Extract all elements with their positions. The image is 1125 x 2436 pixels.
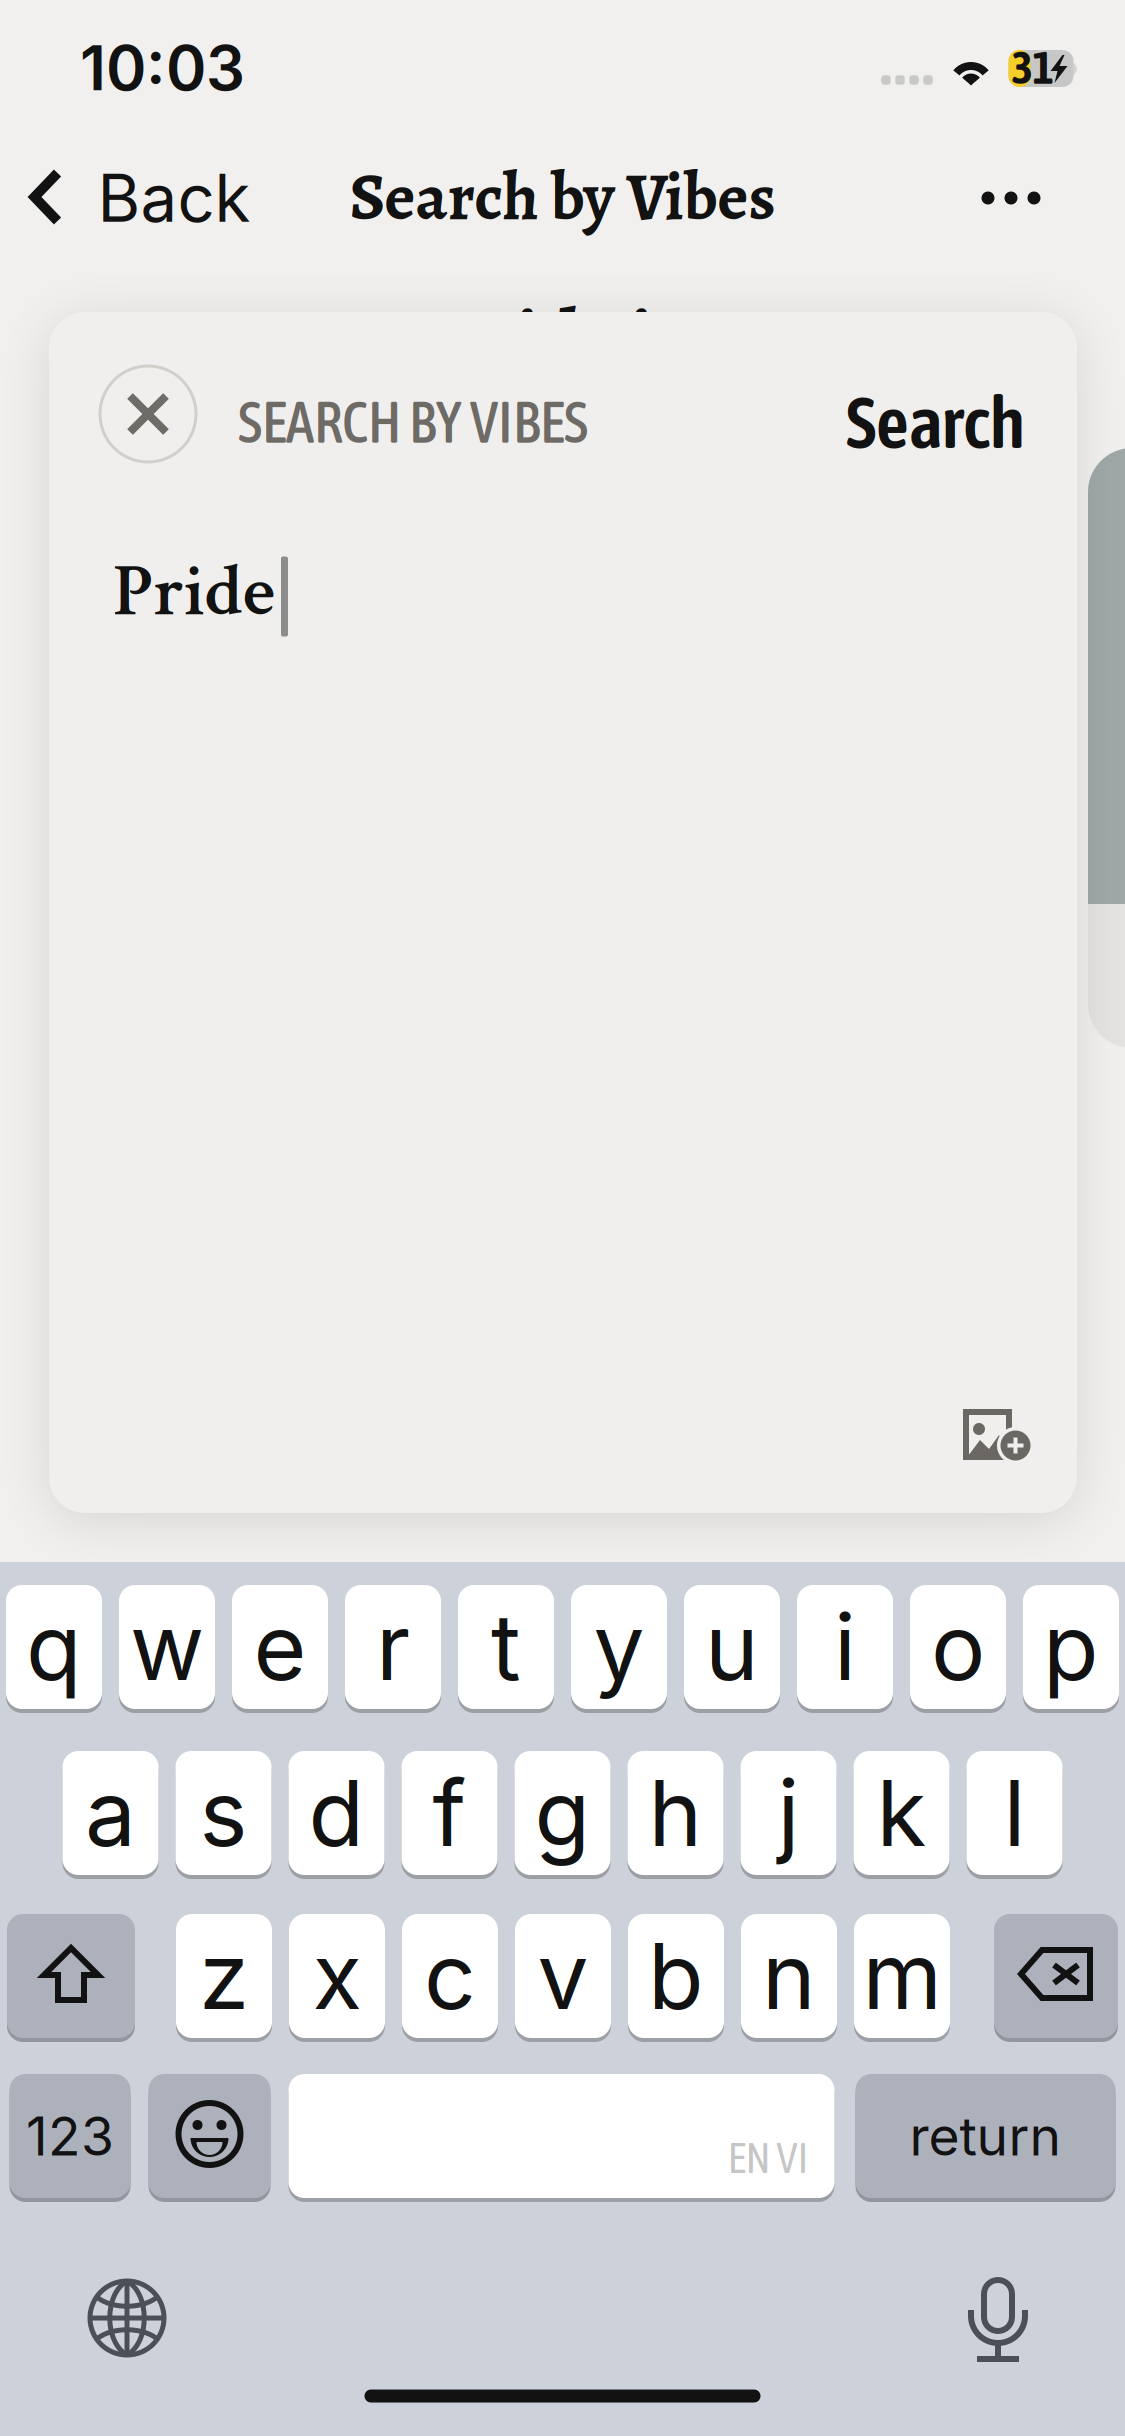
staticText: 10:03 [80, 31, 245, 105]
button[interactable]: Shift [7, 1912, 135, 2040]
staticText: p [1043, 1592, 1099, 1702]
staticText: r [376, 1592, 410, 1702]
button[interactable]: w [119, 1583, 215, 1711]
staticText: q [26, 1592, 82, 1702]
button[interactable]: Close [93, 359, 203, 469]
button[interactable]: p [1023, 1583, 1119, 1711]
button[interactable]: 123 [9, 2072, 130, 2200]
button[interactable]: x [289, 1912, 385, 2040]
staticText: m [862, 1921, 941, 2031]
staticText: EN VI [727, 2133, 808, 2182]
button[interactable]: Dictate [945, 2248, 1051, 2388]
button[interactable]: v [515, 1912, 611, 2040]
staticText: SEARCH BY VIBES [238, 389, 588, 455]
staticText: w [130, 1592, 204, 1702]
staticText: Search by Vibes [349, 152, 775, 242]
button[interactable]: m [854, 1912, 950, 2040]
staticText: t [491, 1592, 521, 1702]
button[interactable]: f [401, 1749, 497, 1877]
button[interactable]: l [966, 1749, 1062, 1877]
button[interactable]: b [628, 1912, 724, 2040]
button[interactable]: i [797, 1583, 893, 1711]
button[interactable]: g [514, 1749, 610, 1877]
staticText: i [834, 1592, 856, 1702]
staticText: y [593, 1592, 644, 1702]
staticText: 123 [26, 2104, 114, 2168]
staticText: return [909, 2104, 1061, 2168]
button[interactable]: More options [956, 156, 1066, 240]
staticText: c [424, 1921, 476, 2031]
staticText: u [705, 1592, 759, 1702]
staticText: v [537, 1921, 588, 2031]
staticText: Back [97, 158, 250, 237]
button[interactable]: h [627, 1749, 723, 1877]
button[interactable]: a [62, 1749, 158, 1877]
button[interactable]: return [855, 2072, 1115, 2200]
button[interactable]: Add photo [943, 1388, 1055, 1484]
button[interactable]: Delete [994, 1912, 1118, 2040]
button[interactable]: o [910, 1583, 1006, 1711]
staticText: b [648, 1921, 704, 2031]
button[interactable]: t [458, 1583, 554, 1711]
button[interactable]: k [853, 1749, 949, 1877]
staticText: x [312, 1921, 361, 2031]
button[interactable]: Space [288, 2072, 834, 2200]
button[interactable]: d [288, 1749, 384, 1877]
button[interactable]: z [176, 1912, 272, 2040]
staticText: Pride [113, 543, 275, 641]
staticText: a [85, 1758, 136, 1868]
button[interactable]: n [741, 1912, 837, 2040]
button[interactable]: Search [725, 377, 1025, 467]
staticText: Pride is [440, 285, 685, 391]
button[interactable]: Emoji [148, 2072, 270, 2200]
button[interactable]: e [232, 1583, 328, 1711]
staticText: s [199, 1758, 247, 1868]
staticText: n [762, 1921, 816, 2031]
staticText: j [777, 1758, 799, 1868]
staticText: Search [846, 381, 1025, 463]
button[interactable]: Switch keyboard [63, 2254, 191, 2382]
button[interactable]: s [175, 1749, 271, 1877]
button[interactable]: y [571, 1583, 667, 1711]
staticText: d [308, 1758, 364, 1868]
staticText: e [253, 1592, 306, 1702]
button[interactable]: c [402, 1912, 498, 2040]
staticText: h [648, 1758, 702, 1868]
staticText: o [931, 1592, 985, 1702]
button[interactable]: Back [3, 143, 276, 253]
staticText: z [199, 1921, 249, 2031]
button[interactable]: q [6, 1583, 102, 1711]
staticText: l [1003, 1758, 1025, 1868]
staticText: 31 [1011, 41, 1053, 93]
staticText: g [534, 1758, 590, 1868]
button[interactable]: j [740, 1749, 836, 1877]
button[interactable]: r [345, 1583, 441, 1711]
button[interactable]: u [684, 1583, 780, 1711]
staticText: k [876, 1758, 926, 1868]
staticText: f [432, 1758, 466, 1868]
